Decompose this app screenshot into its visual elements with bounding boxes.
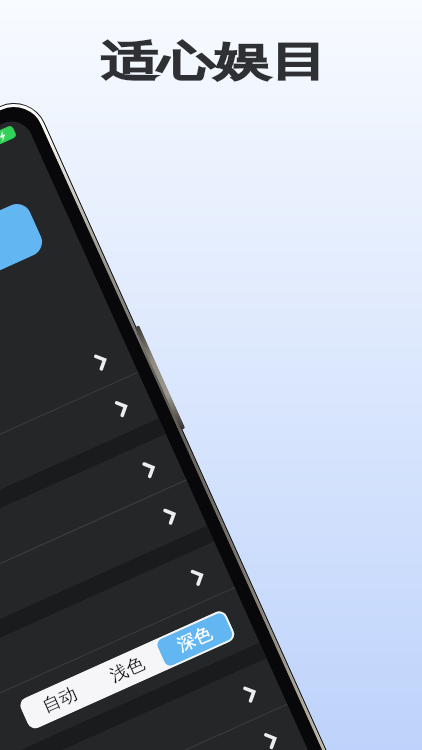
other: Open [264, 730, 280, 750]
other: Open [114, 398, 130, 417]
staticText: 深色 [174, 622, 216, 657]
button[interactable]: 自动 [20, 672, 99, 728]
button[interactable]: Open [0, 373, 159, 599]
other: Open [142, 459, 158, 479]
button[interactable]: Open [0, 705, 308, 750]
staticText: 浅色 [106, 652, 148, 688]
other: Open [190, 567, 206, 586]
button[interactable] [0, 199, 47, 404]
button[interactable]: Open [0, 541, 235, 750]
button[interactable]: Open [0, 480, 207, 706]
other: Open [93, 351, 110, 371]
button[interactable]: Open [0, 326, 138, 552]
button[interactable]: Open [0, 658, 287, 750]
other: Open [243, 683, 259, 703]
button[interactable]: 深色 [155, 611, 234, 668]
staticText: 适心娱目 [0, 36, 422, 86]
button[interactable]: Open [0, 434, 186, 660]
staticText: 自动 [39, 682, 81, 718]
button[interactable]: 浅色 [88, 641, 167, 698]
other: Open [163, 506, 179, 525]
